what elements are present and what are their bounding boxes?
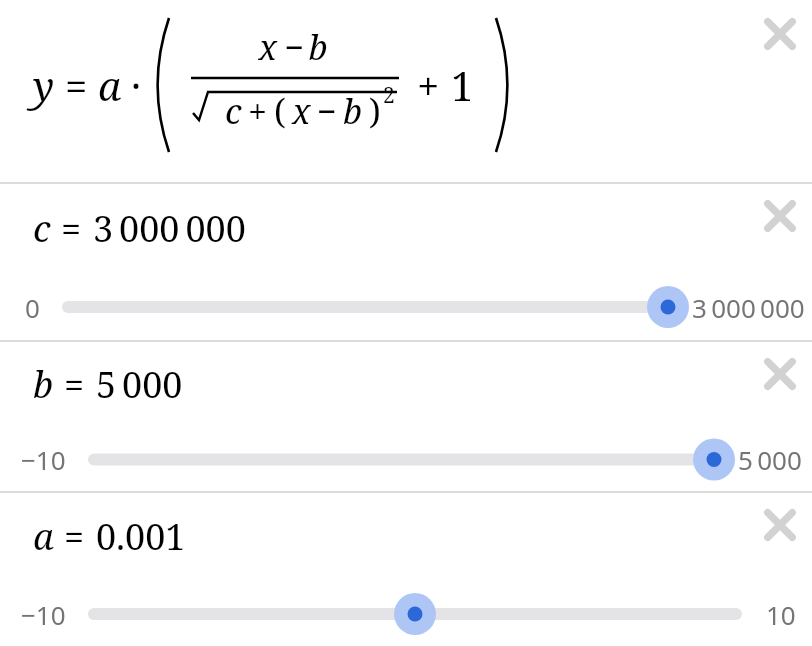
button[interactable]: Remove (752, 497, 808, 553)
button[interactable]: Remove (0, 0, 812, 182)
button[interactable]: Remove (0, 342, 812, 491)
button[interactable]: Remove (0, 493, 812, 646)
button[interactable]: Remove (0, 184, 812, 340)
button[interactable]: Remove (752, 188, 808, 244)
button[interactable]: Remove (752, 346, 808, 402)
button[interactable]: Remove (752, 6, 808, 62)
